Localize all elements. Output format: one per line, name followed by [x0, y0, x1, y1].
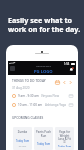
button[interactable]: Zumba — [13, 127, 32, 150]
staticText: Zumba — [15, 130, 30, 134]
button[interactable]: Menu — [10, 66, 15, 71]
staticText: Today 9am — [57, 145, 72, 147]
button[interactable]: Calendar — [55, 80, 60, 85]
staticText: UPCOMING CLASSES — [12, 116, 44, 120]
staticText: Vinyasa Flow Consultation — [41, 94, 69, 98]
staticText: Yoga for Weight Loss & Fit II — [57, 130, 72, 143]
staticText: Today 9am — [15, 139, 30, 143]
button[interactable]: 9 am - 9:30 am — [12, 92, 73, 99]
button[interactable]: Yoga for Weight Loss & Fit II — [55, 127, 74, 150]
staticText: Easily see what to work on for the day. — [8, 15, 81, 34]
button[interactable]: 10 am - 11:00 am — [12, 101, 73, 108]
button[interactable]: Previous day — [62, 80, 67, 85]
staticText: 9 am - 9:30 am — [18, 94, 39, 98]
staticText: Today 9am — [36, 142, 51, 146]
staticText: Ashtanga Yoga combo — [45, 103, 69, 107]
staticText: Welcome back — [36, 65, 51, 68]
staticText: 60 min session — [15, 144, 30, 147]
staticText: THINGS TO DO TODAY — [12, 79, 46, 83]
button[interactable]: Pants Push Run — [34, 127, 53, 150]
button[interactable]: Next day — [68, 80, 73, 85]
staticText: 31 Aug 2020 — [12, 86, 30, 90]
button[interactable]: Notifications — [69, 67, 74, 72]
staticText: Pants Push Run — [36, 130, 51, 137]
staticText: PG LOGO — [34, 69, 53, 75]
staticText: 10 am - 11:00 am — [18, 103, 43, 107]
staticText: 1:55 — [64, 62, 70, 66]
